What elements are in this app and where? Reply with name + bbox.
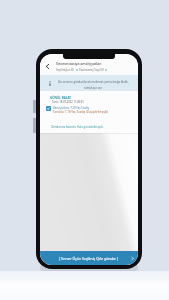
staticText: təmizləyə var [84, 86, 102, 90]
staticText: Bu serverə göndəriləcək məlumat yerinə b… [58, 80, 129, 84]
staticText: Təmizlə: 7-18 Yaş Təsdiq (Dəyişdirilməyi… [53, 110, 109, 114]
staticText: Göndərmə hazırdır. Hələ göndərilməyib. [51, 125, 104, 129]
staticText: Sinxronizasiya əməliyyatları [56, 61, 102, 66]
button[interactable]: [ Server Üçün Seçilmiş Qrkı göndər ] [40, 251, 138, 265]
staticText: GÖNÜL BALAT [50, 96, 72, 100]
staticText: Yazılmamış Sayı (0) [79, 68, 104, 72]
staticText: Tarix: 18-07-2022 11:28:01 [52, 100, 84, 104]
button[interactable]: Back [40, 54, 138, 75]
staticText: Bitmiş bölmə: 7-18 Yaş Təsdiq [53, 106, 90, 110]
staticText: Seçilmişlər (0) [56, 68, 75, 72]
button[interactable]: Back [43, 62, 52, 71]
staticText: [ Server Üçün Seçilmiş Qrkı göndər ] [59, 256, 119, 261]
button[interactable]: GÖNÜL BALAT [40, 91, 138, 133]
